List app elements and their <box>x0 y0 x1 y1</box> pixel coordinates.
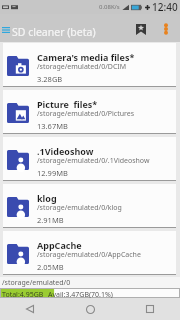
staticText: Avail:3.47GB(70.1%) <box>48 290 113 300</box>
button[interactable]: Home <box>60 298 120 320</box>
staticText: Picture files* <box>37 98 98 110</box>
staticText: SD cleaner (beta) <box>12 25 96 39</box>
staticText: /storage/emulated/0/Pictures <box>37 109 135 119</box>
button[interactable]: More options <box>157 14 175 42</box>
staticText: klog <box>37 192 57 204</box>
staticText: .1Videoshow <box>37 145 94 157</box>
staticText: /storage/emulated/0/AppCache <box>37 250 141 260</box>
button[interactable]: Open navigation menu <box>0 14 12 42</box>
staticText: Camera's media files* <box>37 51 135 63</box>
staticText: Total:4.95GB <box>2 290 44 300</box>
button[interactable]: Camera's media files* <box>3 43 176 87</box>
staticText: AppCache <box>37 239 82 251</box>
staticText: 0.08K/s <box>99 3 120 11</box>
staticText: /storage/emulated/0/.1Videoshow <box>37 156 150 166</box>
button[interactable]: .1Videoshow <box>3 137 176 181</box>
staticText: 13.67MB <box>37 121 68 131</box>
button[interactable]: klog <box>3 184 176 228</box>
staticText: 12.99MB <box>37 168 68 178</box>
staticText: 2.91MB <box>37 215 64 225</box>
staticText: /storage/emulated/0/DCIM <box>37 62 127 72</box>
button[interactable]: Recent apps <box>120 298 180 320</box>
staticText: 12:40 <box>152 0 178 14</box>
staticText: /storage/emulated/0 <box>2 278 71 288</box>
button[interactable]: Bookmarks <box>132 14 150 42</box>
staticText: 2.05MB <box>37 262 64 272</box>
staticText: 3.28GB <box>37 74 63 84</box>
button[interactable]: Picture files* <box>3 90 176 134</box>
button[interactable]: AppCache <box>3 231 176 275</box>
staticText: /storage/emulated/0/klog <box>37 203 122 213</box>
button[interactable]: Back <box>0 298 60 320</box>
